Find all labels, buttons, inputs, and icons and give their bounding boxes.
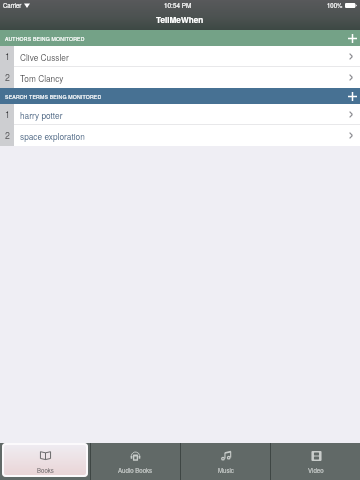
- staticText: 10:54 PM: [164, 1, 192, 10]
- staticText: Books: [37, 466, 54, 475]
- staticText: Audio Books: [118, 466, 153, 475]
- staticText: space exploration: [20, 130, 85, 142]
- button[interactable]: Audio Books: [91, 443, 180, 480]
- staticText: harry potter: [20, 109, 63, 121]
- button[interactable]: Music: [181, 443, 270, 480]
- staticText: Video: [308, 466, 324, 475]
- button[interactable]: 1: [0, 104, 360, 125]
- button[interactable]: Video: [271, 443, 360, 480]
- staticText: 1: [5, 108, 10, 121]
- staticText: Clive Cussler: [20, 51, 69, 63]
- staticText: 2: [5, 71, 10, 84]
- staticText: TellMeWhen: [156, 14, 204, 26]
- staticText: 1: [5, 50, 10, 63]
- staticText: AUTHORS BEING MONITORED: [5, 35, 85, 42]
- button[interactable]: 2: [0, 125, 360, 146]
- button[interactable]: 2: [0, 67, 360, 88]
- staticText: SEARCH TERMS BEING MONITORED: [5, 93, 102, 100]
- staticText: Tom Clancy: [20, 72, 64, 84]
- staticText: Music: [218, 466, 234, 475]
- button[interactable]: 1: [0, 46, 360, 67]
- button[interactable]: Add: [344, 88, 360, 104]
- staticText: 2: [5, 129, 10, 142]
- staticText: Carrier: [3, 1, 22, 10]
- staticText: 100%: [327, 1, 343, 10]
- button[interactable]: Books: [2, 443, 88, 477]
- button[interactable]: Add: [344, 30, 360, 46]
